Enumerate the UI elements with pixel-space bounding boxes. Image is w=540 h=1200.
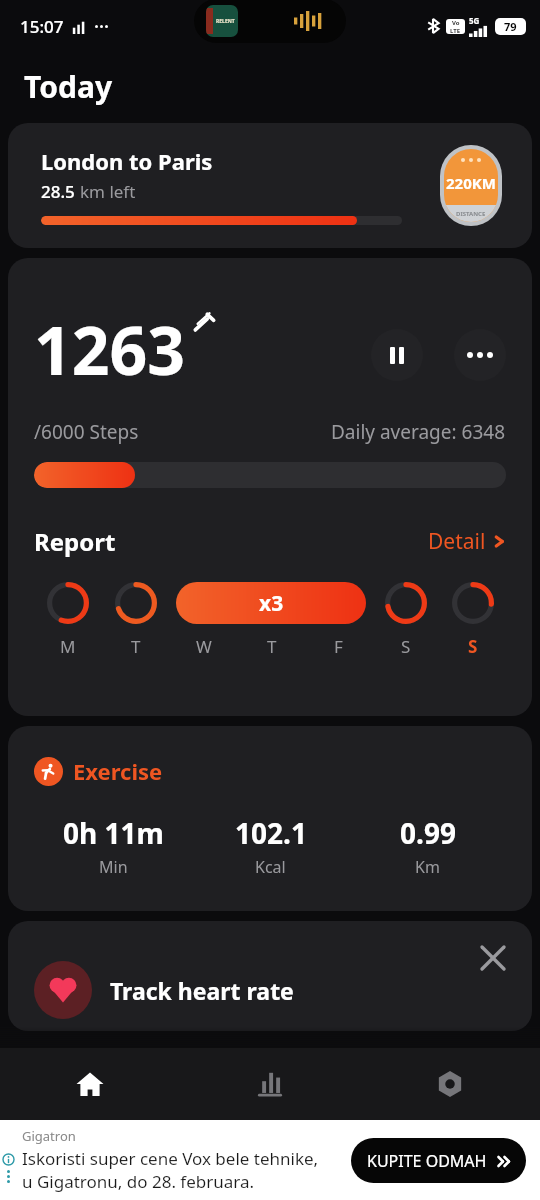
staticText: M bbox=[60, 635, 76, 658]
button[interactable]: Edit goal bbox=[193, 312, 216, 335]
staticText: Km bbox=[415, 856, 440, 878]
staticText: Gigatron bbox=[22, 1127, 76, 1145]
staticText: u Gigatronu, do 28. februara. bbox=[22, 1170, 255, 1193]
staticText: F bbox=[334, 635, 343, 658]
staticText: 79 bbox=[504, 19, 517, 34]
staticText: RELENT bbox=[216, 18, 235, 25]
button[interactable]: Home bbox=[0, 1048, 180, 1120]
button[interactable]: More options bbox=[454, 329, 506, 381]
staticText: S bbox=[468, 635, 478, 658]
staticText: Report bbox=[34, 525, 116, 558]
button[interactable]: Pause bbox=[371, 329, 423, 381]
staticText: Today bbox=[24, 66, 113, 107]
staticText: /6000 Steps bbox=[34, 419, 139, 445]
staticText: DISTANCE bbox=[456, 210, 486, 218]
staticText: S bbox=[401, 635, 411, 658]
button[interactable]: Exercise bbox=[8, 726, 532, 911]
staticText: 220KM bbox=[446, 173, 496, 193]
button[interactable]: London to Paris bbox=[8, 123, 532, 248]
button[interactable] bbox=[385, 582, 427, 624]
button[interactable]: Settings bbox=[360, 1048, 540, 1120]
button[interactable]: x3 bbox=[176, 582, 366, 624]
staticText: 0h 11m bbox=[63, 814, 164, 852]
staticText: Vo bbox=[452, 19, 460, 27]
staticText: Iskoristi super cene Vox bele tehnike, bbox=[22, 1147, 319, 1170]
staticText: W bbox=[196, 635, 212, 658]
staticText: Exercise bbox=[73, 756, 163, 786]
staticText: Daily average: 6348 bbox=[331, 419, 506, 445]
staticText: 1263 bbox=[34, 304, 186, 394]
button[interactable]: KUPITE ODMAH bbox=[351, 1138, 526, 1183]
staticText: T bbox=[267, 635, 277, 658]
button[interactable]: Detail bbox=[428, 527, 506, 556]
staticText: Min bbox=[99, 856, 128, 878]
staticText: 0.99 bbox=[400, 814, 456, 852]
staticText: T bbox=[131, 635, 141, 658]
staticText: LTE bbox=[450, 27, 461, 34]
button[interactable]: Statistics bbox=[180, 1048, 360, 1120]
staticText: 102.1 bbox=[235, 814, 307, 852]
staticText: Kcal bbox=[255, 856, 286, 878]
staticText: 15:07 bbox=[20, 15, 64, 38]
staticText: x3 bbox=[259, 589, 284, 618]
staticText: km left bbox=[80, 180, 136, 203]
button[interactable]: Track heart rate bbox=[8, 921, 532, 1031]
staticText: KUPITE ODMAH bbox=[367, 1150, 487, 1172]
button[interactable]: Close bbox=[482, 947, 504, 969]
staticText: Detail bbox=[428, 527, 486, 556]
staticText: London to Paris bbox=[41, 146, 213, 176]
button[interactable] bbox=[452, 582, 494, 624]
staticText: 5G bbox=[469, 15, 480, 26]
staticText: 28.5 bbox=[41, 180, 75, 203]
staticText: Track heart rate bbox=[110, 975, 294, 1006]
button[interactable] bbox=[115, 582, 157, 624]
button[interactable] bbox=[47, 582, 89, 624]
